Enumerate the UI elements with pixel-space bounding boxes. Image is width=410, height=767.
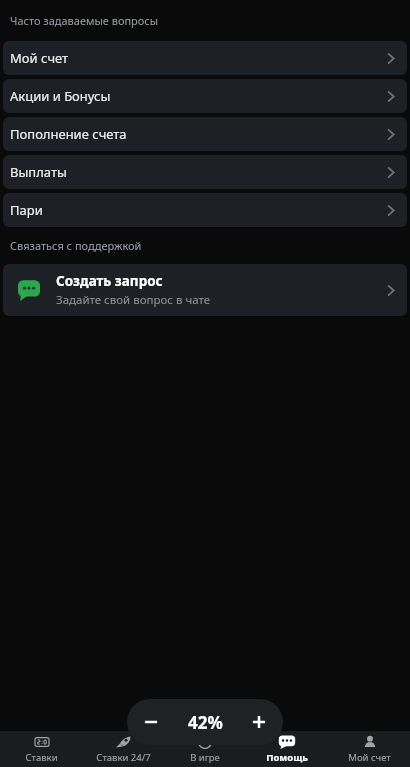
staticText: В игре (190, 751, 220, 764)
staticText: Акции и Бонусы (10, 87, 111, 105)
staticText: Задайте свой вопрос в чате (56, 292, 211, 308)
staticText: Пополнение счета (10, 125, 127, 143)
button[interactable]: Пополнение счета (3, 117, 407, 151)
button[interactable]: В игре (164, 731, 246, 767)
button[interactable]: Zoom in (235, 699, 283, 745)
staticText: Создать запрос (56, 272, 163, 290)
staticText: Ставки 24/7 (96, 751, 151, 764)
button[interactable]: Мой счет (3, 41, 407, 75)
staticText: Выплаты (10, 163, 67, 181)
staticText: Часто задаваемые вопросы (10, 13, 159, 28)
button[interactable]: Мой счет (328, 731, 410, 767)
button[interactable]: Помощь (246, 731, 328, 767)
staticText: Мой счет (10, 49, 69, 67)
button[interactable]: Ставки (0, 731, 82, 767)
staticText: 42% (188, 711, 223, 734)
staticText: Ставки (25, 751, 58, 764)
button[interactable]: Zoom out (127, 699, 175, 745)
button[interactable]: Пари (3, 193, 407, 227)
staticText: Связаться с поддержкой (10, 238, 142, 253)
staticText: Помощь (266, 751, 308, 764)
button[interactable]: Акции и Бонусы (3, 79, 407, 113)
staticText: Мой счет (348, 751, 391, 764)
button[interactable]: Выплаты (3, 155, 407, 189)
staticText: Пари (10, 201, 43, 219)
button[interactable]: Ставки 24/7 (82, 731, 164, 767)
button[interactable]: Создать запрос (3, 264, 407, 316)
